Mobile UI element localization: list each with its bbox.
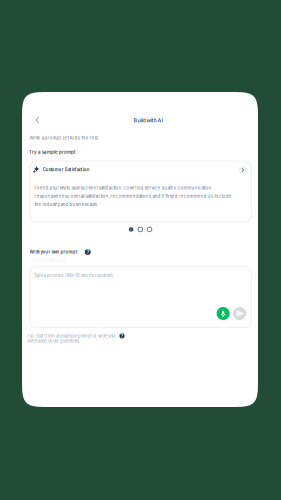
- staticText: ?: [120, 333, 123, 339]
- staticText: Try a sample prompt: [29, 150, 76, 155]
- button[interactable]: Customer Satisfaction: [29, 161, 251, 222]
- button[interactable]: Back: [30, 113, 44, 127]
- button[interactable]: Send prompt: [233, 307, 246, 320]
- staticText: Customer Satisfaction: [43, 167, 90, 172]
- staticText: (1000 remaining): [29, 258, 66, 263]
- button[interactable]: Help about writing prompts: [85, 249, 91, 255]
- staticText: Write your own prompt:: [30, 250, 78, 255]
- staticText: I need a survey to assess client satisfa…: [34, 185, 231, 207]
- button[interactable]: Dictate prompt: [217, 307, 230, 320]
- staticText: Type a prompt. (Min 10 words required): [34, 273, 114, 278]
- staticText: Tip: Start from an example prompt or wri…: [27, 333, 116, 343]
- staticText: Write a prompt. Let AI do the rest.: [29, 135, 98, 141]
- staticText: ?: [86, 248, 89, 256]
- button[interactable]: Prompt guidelines: [119, 333, 125, 338]
- staticText: Build with AI: [133, 117, 162, 124]
